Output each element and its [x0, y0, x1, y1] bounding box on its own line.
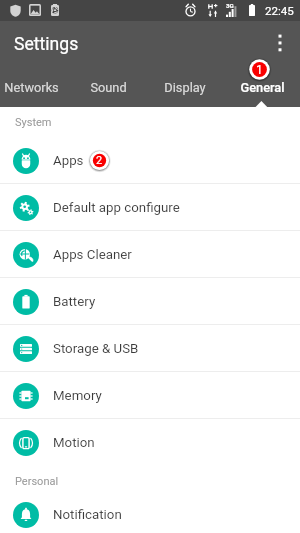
button[interactable]: Apps [0, 137, 300, 184]
staticText: 1 [256, 63, 263, 77]
staticText: Networks [4, 80, 59, 95]
staticText: Apps [53, 153, 84, 169]
staticText: Notification [53, 507, 122, 523]
staticText: Default app configure [53, 200, 180, 216]
button[interactable]: Battery [0, 278, 300, 325]
staticText: Personal [15, 475, 59, 488]
button[interactable]: General [224, 68, 300, 107]
staticText: Sound [90, 80, 127, 95]
button[interactable]: Notification [0, 496, 300, 533]
staticText: Storage & USB [53, 341, 139, 357]
staticText: Motion [53, 435, 95, 451]
staticText: 3G [226, 2, 234, 9]
staticText: General [240, 80, 285, 95]
button[interactable]: Display [147, 68, 223, 107]
button[interactable]: Default app configure [0, 184, 300, 231]
button[interactable]: Memory [0, 372, 300, 419]
button[interactable]: More options [265, 21, 294, 68]
button[interactable]: Networks [0, 68, 70, 107]
button[interactable]: Storage & USB [0, 325, 300, 372]
staticText: Display [164, 80, 206, 95]
staticText: Settings [14, 34, 79, 55]
button[interactable]: Motion [0, 419, 300, 466]
staticText: System [15, 116, 52, 129]
staticText: 2 [96, 154, 103, 167]
staticText: Battery [53, 294, 96, 310]
staticText: Memory [53, 388, 102, 404]
staticText: 22:45 [265, 4, 294, 18]
button[interactable]: Apps Cleaner [0, 231, 300, 278]
button[interactable]: Sound [71, 68, 146, 107]
staticText: Apps Cleaner [53, 247, 132, 263]
